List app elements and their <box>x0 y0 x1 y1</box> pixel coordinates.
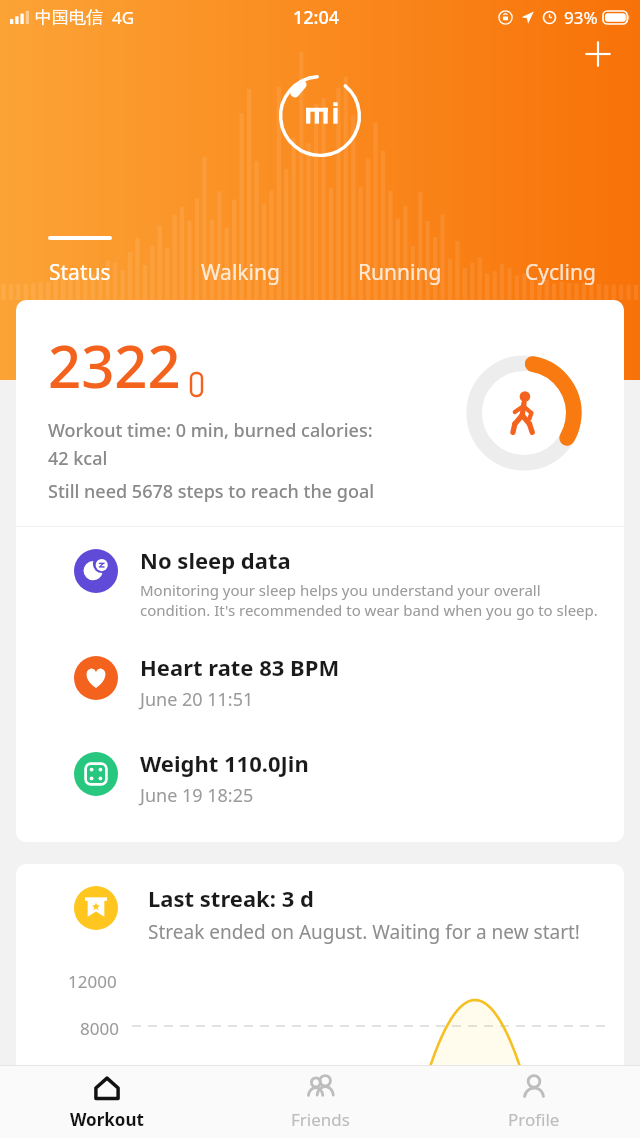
staticText: Heart rate 83 BPM <box>140 652 340 682</box>
button[interactable]: Add <box>572 28 624 80</box>
button[interactable]: Heart rate 83 BPM <box>16 638 624 734</box>
button[interactable]: Friends <box>214 1066 427 1138</box>
staticText: 42 kcal <box>48 446 108 471</box>
staticText: Workout time: 0 min, burned calories: <box>48 418 373 443</box>
staticText: 8000 <box>80 1017 119 1040</box>
button[interactable]: Running <box>320 236 480 287</box>
staticText: 12:04 <box>293 5 340 30</box>
staticText: Running <box>358 258 442 287</box>
button[interactable]: Weight 110.0Jin <box>16 734 624 842</box>
staticText: 2322 <box>48 326 181 405</box>
staticText: Cycling <box>525 258 596 287</box>
staticText: Friends <box>291 1108 350 1131</box>
button[interactable]: 2322 <box>16 300 624 526</box>
staticText: Status <box>49 258 111 287</box>
button[interactable]: Profile <box>427 1066 640 1138</box>
button[interactable]: Cycling <box>480 236 640 287</box>
staticText: Streak ended on August. Waiting for a ne… <box>148 919 580 945</box>
staticText: Walking <box>201 258 280 287</box>
staticText: June 20 11:51 <box>140 687 254 712</box>
staticText: Last streak: 3 d <box>148 883 314 913</box>
staticText: Still need 5678 steps to reach the goal <box>48 479 375 504</box>
staticText: No sleep data <box>140 545 291 575</box>
staticText: June 19 18:25 <box>140 783 254 808</box>
staticText: 中国电信 <box>35 7 103 28</box>
staticText: 93% <box>564 6 598 29</box>
button[interactable]: Workout <box>0 1066 214 1138</box>
staticText: Monitoring your sleep helps you understa… <box>140 580 598 620</box>
staticText: 12000 <box>68 970 117 993</box>
staticText: Weight 110.0Jin <box>140 748 309 778</box>
button[interactable]: Walking <box>160 236 320 287</box>
staticText: Profile <box>508 1108 560 1131</box>
button[interactable]: No sleep data <box>16 527 624 638</box>
staticText: Workout <box>70 1108 144 1131</box>
button[interactable]: Status <box>0 236 160 287</box>
button[interactable]: Last streak: 3 d <box>16 864 624 956</box>
staticText: 4G <box>112 6 135 29</box>
